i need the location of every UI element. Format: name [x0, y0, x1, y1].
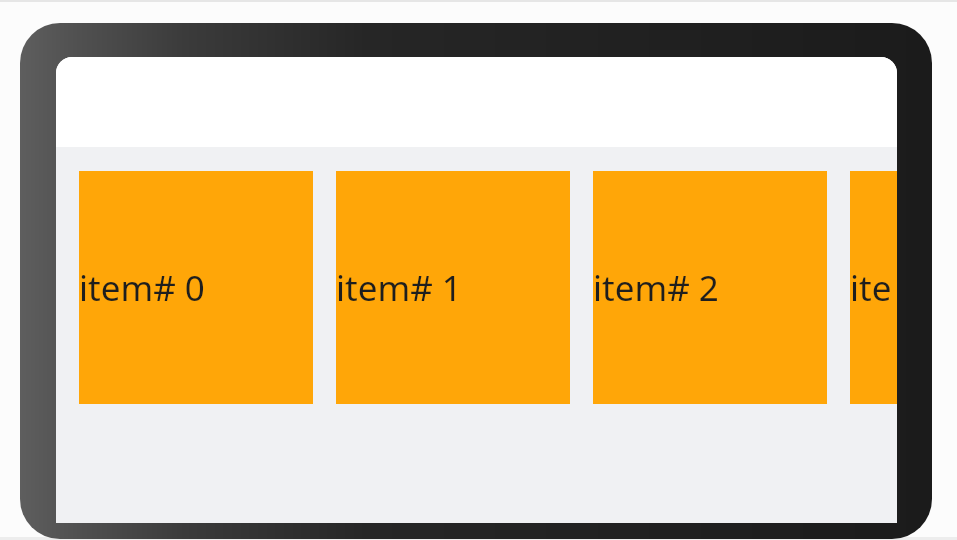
staticText: item# 2	[593, 264, 719, 312]
button[interactable]: item# 0	[79, 171, 313, 404]
staticText: item# 0	[79, 264, 205, 312]
button[interactable]: item# 3	[850, 171, 897, 404]
button[interactable]: item# 2	[593, 171, 827, 404]
staticText: item# 1	[336, 264, 462, 312]
staticText: item# 3	[850, 264, 897, 312]
button[interactable]: item# 1	[336, 171, 570, 404]
